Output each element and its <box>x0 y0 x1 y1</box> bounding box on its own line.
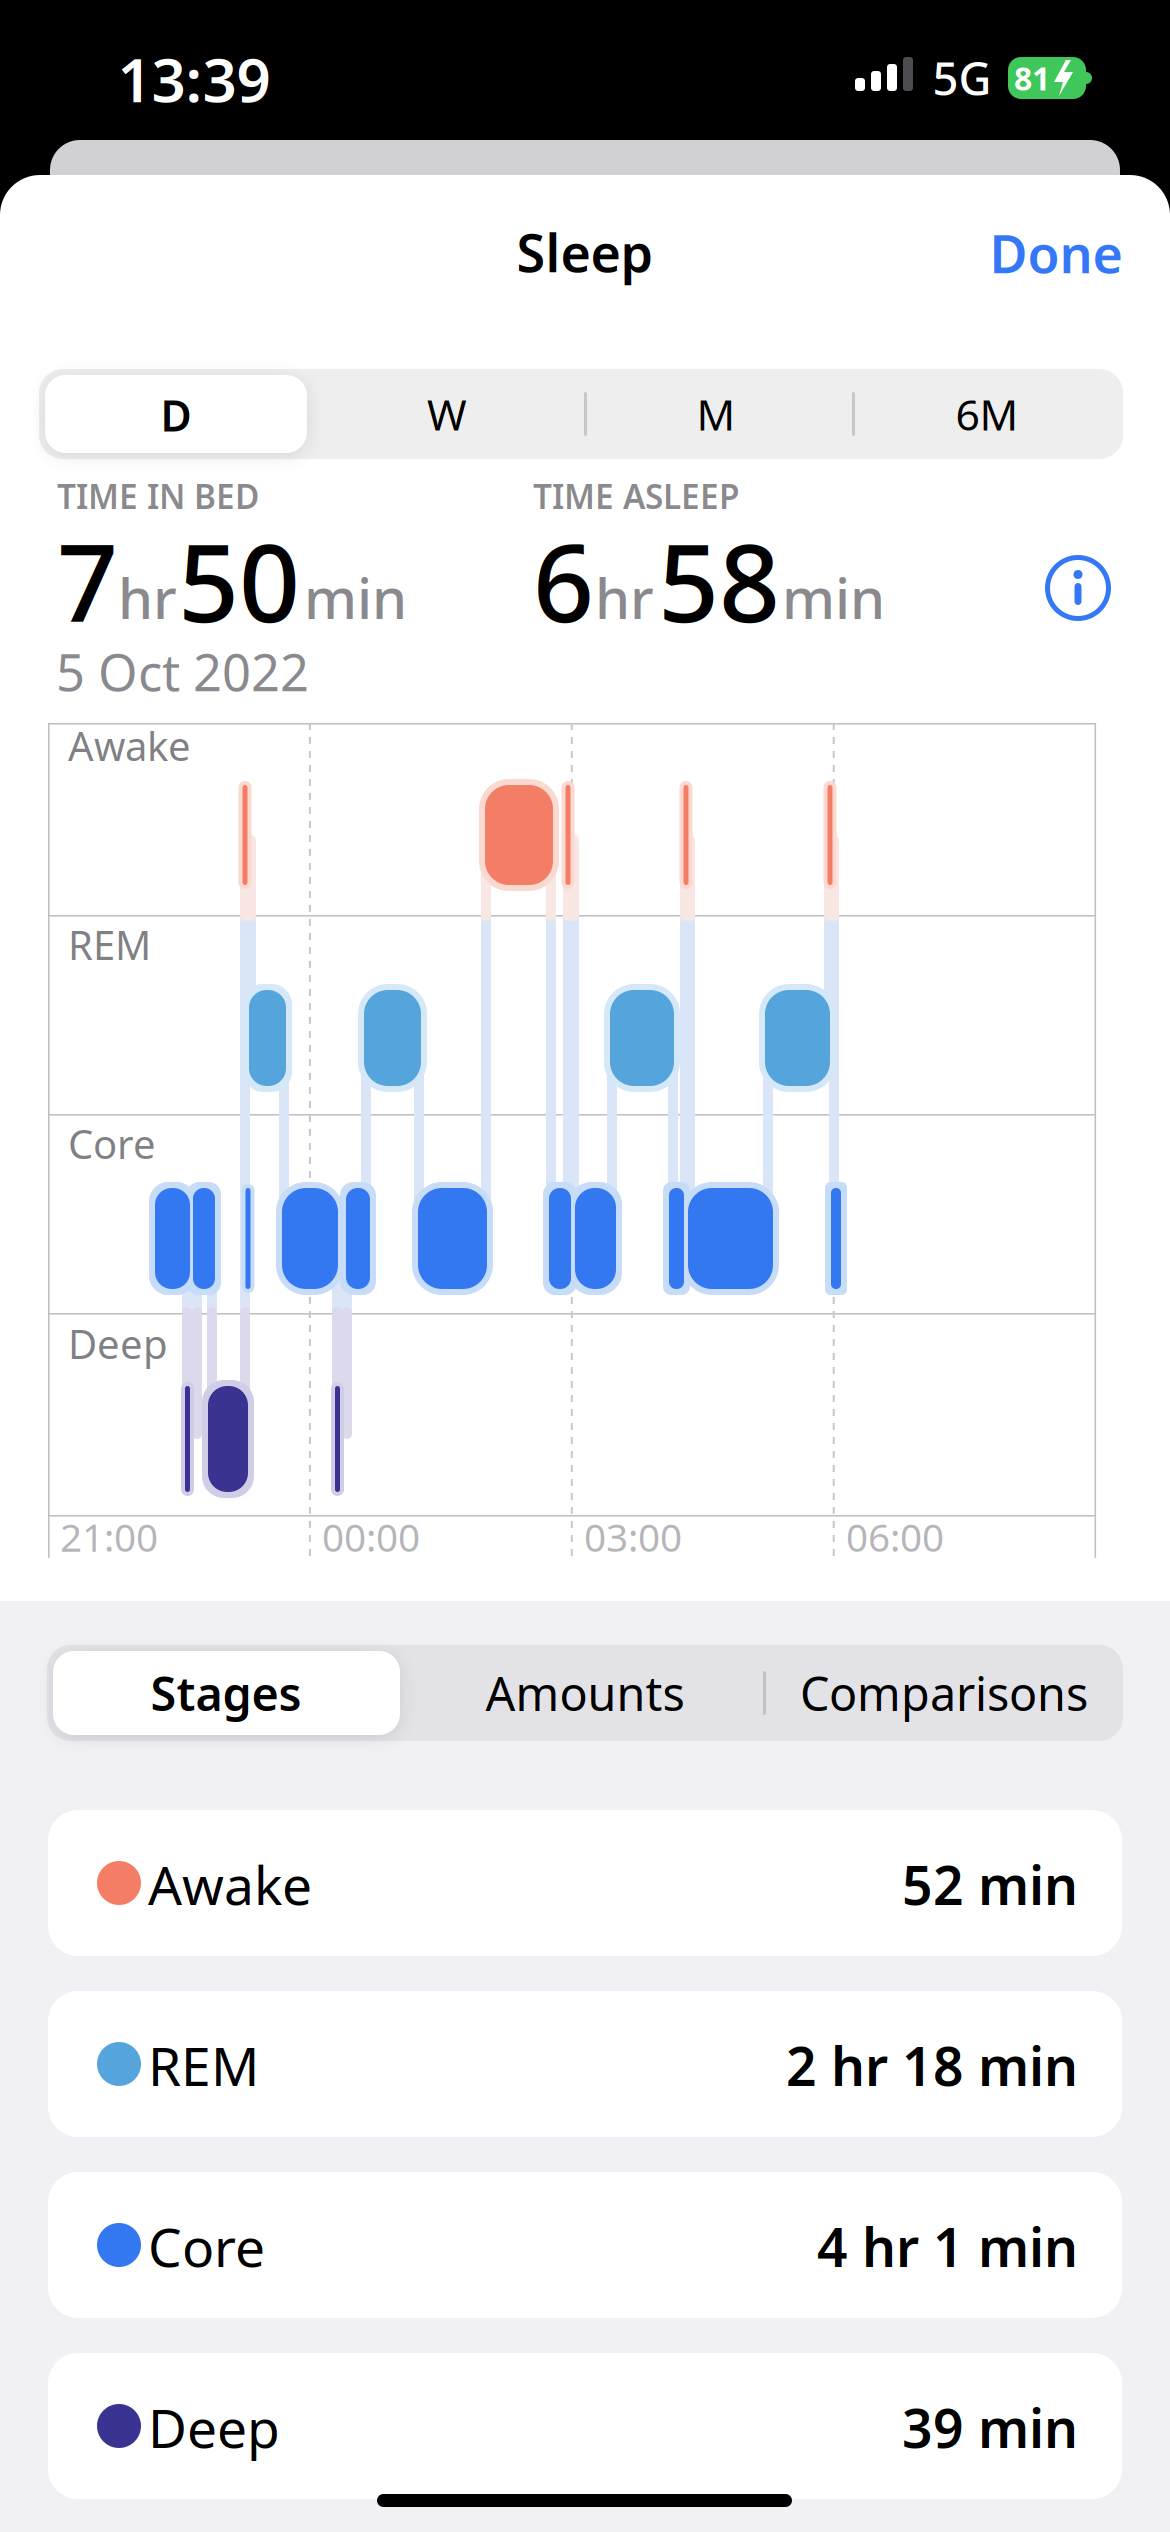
staticText: Sleep <box>516 217 653 287</box>
staticText: 52 min <box>902 1849 1078 1920</box>
staticText: 03:00 <box>584 1511 682 1562</box>
staticText: 13:39 <box>117 39 270 119</box>
staticText: 21:00 <box>60 1511 158 1562</box>
staticText: W <box>427 386 467 442</box>
staticText: TIME IN BED <box>57 474 259 518</box>
button[interactable]: M <box>585 375 847 453</box>
button[interactable]: Done <box>989 218 1122 288</box>
staticText: Awake <box>68 719 191 772</box>
staticText: TIME ASLEEP <box>533 474 740 518</box>
staticText: 2 hr 18 min <box>786 2030 1078 2101</box>
staticText: 00:00 <box>322 1511 420 1562</box>
staticText: 06:00 <box>846 1511 944 1562</box>
staticText: D <box>160 387 191 443</box>
staticText: Deep <box>68 1317 168 1370</box>
staticText: Amounts <box>485 1662 684 1724</box>
button[interactable]: W <box>316 375 578 453</box>
staticText: hr <box>595 560 654 634</box>
staticText: min <box>304 560 407 634</box>
staticText: Comparisons <box>800 1662 1088 1724</box>
staticText: 39 min <box>902 2392 1078 2463</box>
staticText: Awake <box>148 1849 312 1920</box>
staticText: REM <box>68 918 151 971</box>
button[interactable]: Amounts <box>411 1651 758 1735</box>
staticText: Done <box>989 218 1122 288</box>
staticText: 6 <box>533 510 594 652</box>
staticText: 5G <box>932 48 991 108</box>
staticText: 5 Oct 2022 <box>56 638 309 705</box>
staticText: 6M <box>955 386 1018 442</box>
staticText: M <box>696 386 735 442</box>
staticText: 7 <box>57 510 118 652</box>
staticText: 50 <box>178 510 300 652</box>
staticText: Stages <box>150 1662 301 1724</box>
button[interactable]: D <box>45 376 307 454</box>
staticText: min <box>782 560 885 634</box>
staticText: Deep <box>148 2392 280 2463</box>
staticText: Core <box>148 2211 265 2282</box>
staticText: REM <box>148 2030 259 2101</box>
staticText: hr <box>118 560 177 634</box>
button[interactable]: About Sleep <box>1045 555 1111 621</box>
staticText: 4 hr 1 min <box>817 2211 1078 2282</box>
staticText: 58 <box>658 510 780 652</box>
staticText: Core <box>68 1117 156 1170</box>
button[interactable]: Stages <box>52 1651 399 1735</box>
button[interactable]: Comparisons <box>770 1651 1117 1735</box>
staticText: 81 <box>1014 57 1050 99</box>
button[interactable]: 6M <box>856 375 1118 453</box>
